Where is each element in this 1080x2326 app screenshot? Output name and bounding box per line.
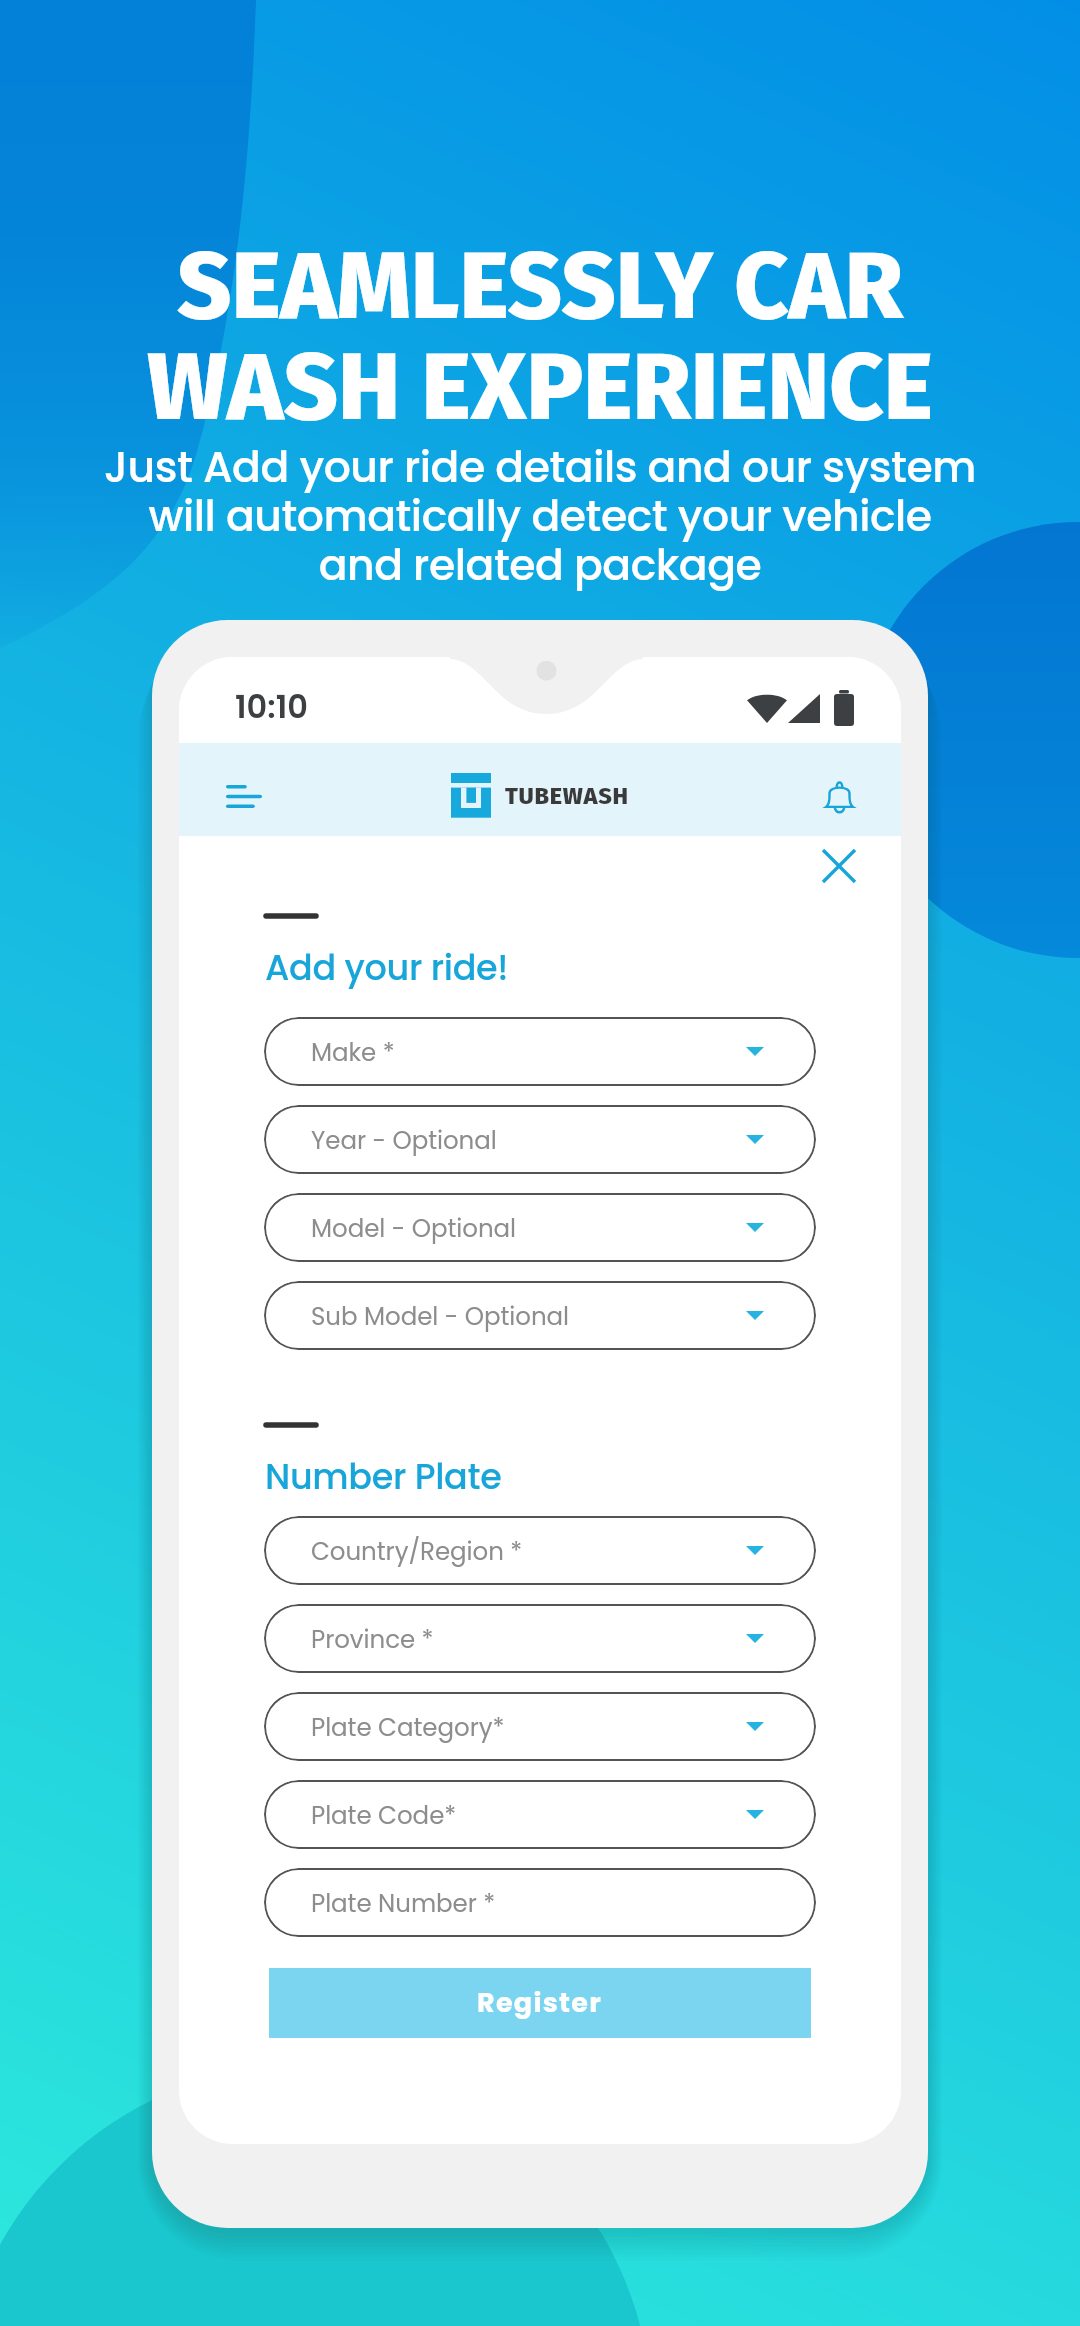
button[interactable]: Sub Model - Optional	[264, 1281, 816, 1350]
button[interactable]: Model - Optional	[264, 1193, 816, 1262]
staticText: Plate Category*	[311, 1710, 505, 1744]
button[interactable]: Country/Region *	[264, 1516, 816, 1585]
staticText: Just Add your ride details and our syste…	[0, 437, 1080, 595]
button[interactable]: Year - Optional	[264, 1105, 816, 1174]
staticText: Plate Code*	[311, 1798, 457, 1832]
button[interactable]: Close	[813, 840, 865, 892]
button[interactable]: Make *	[264, 1017, 816, 1086]
staticText: Make *	[311, 1035, 395, 1069]
staticText: Year - Optional	[311, 1123, 497, 1157]
button[interactable]: TUBEWASH	[451, 773, 629, 818]
staticText: Add your ride!	[265, 943, 509, 992]
staticText: Number Plate	[265, 1452, 502, 1501]
staticText: 10:10	[235, 684, 308, 729]
button[interactable]: Plate Code*	[264, 1780, 816, 1849]
staticText: Model - Optional	[311, 1211, 517, 1245]
button[interactable]: Plate Category*	[264, 1692, 816, 1761]
staticText: Plate Number *	[311, 1886, 496, 1920]
staticText: Sub Model - Optional	[311, 1299, 570, 1333]
staticText: TUBEWASH	[505, 782, 629, 810]
staticText: Register	[477, 1984, 603, 2022]
staticText: Country/Region *	[311, 1534, 523, 1568]
button[interactable]: Register	[269, 1968, 811, 2038]
button[interactable]: Menu	[215, 767, 273, 825]
staticText: SEAMLESSLY CAR WASH EXPERIENCE	[0, 230, 1080, 444]
button[interactable]: Province *	[264, 1604, 816, 1673]
button[interactable]: Plate Number *	[264, 1868, 816, 1937]
staticText: Province *	[311, 1622, 434, 1656]
button[interactable]: Notifications	[810, 767, 868, 825]
